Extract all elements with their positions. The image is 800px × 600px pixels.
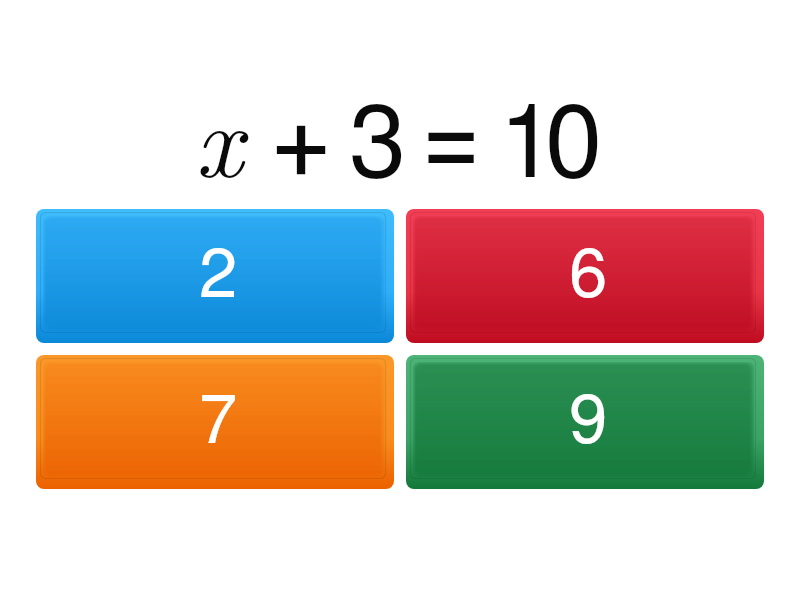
staticText: 9 (569, 364, 608, 463)
staticText: 3 (349, 59, 407, 206)
staticText: + (267, 79, 336, 204)
staticText: 7 (199, 364, 238, 463)
staticText: 0 (545, 59, 603, 206)
button[interactable]: 2 (36, 209, 394, 343)
staticText: = (417, 77, 486, 202)
staticText: 1 (499, 59, 557, 206)
button[interactable]: 6 (406, 209, 764, 343)
staticText: x (195, 61, 243, 207)
button[interactable]: 9 (406, 355, 764, 489)
button[interactable]: 7 (36, 355, 394, 489)
staticText: 6 (569, 218, 608, 317)
staticText: 2 (199, 218, 238, 317)
